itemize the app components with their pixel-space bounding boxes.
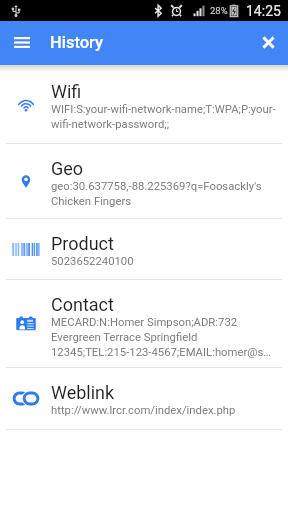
- staticText: MECARD:N:Homer Simpson;ADR:732: [51, 316, 238, 329]
- staticText: Evergreen Terrace Springfield: [51, 331, 198, 344]
- button[interactable]: Product: [0, 219, 288, 279]
- staticText: Chicken Fingers: [51, 195, 132, 208]
- staticText: 28%: [210, 5, 228, 16]
- button[interactable]: Wifi: [0, 65, 288, 143]
- staticText: Wifi: [51, 81, 82, 102]
- button[interactable]: Open navigation menu: [7, 27, 37, 57]
- staticText: 12345;TEL:215-123-4567;EMAIL:homer@s…: [51, 346, 271, 359]
- staticText: Contact: [51, 294, 114, 315]
- staticText: http://www.lrcr.com/index/index.php: [51, 404, 236, 417]
- button[interactable]: Contact: [0, 280, 288, 367]
- staticText: wifi-network-password;;: [51, 118, 170, 131]
- button[interactable]: Geo: [0, 144, 288, 218]
- button[interactable]: Weblink: [0, 368, 288, 429]
- staticText: geo:30.637758,-88.225369?q=Foosackly's: [51, 180, 262, 193]
- staticText: 14:25: [246, 3, 281, 19]
- staticText: History: [50, 33, 104, 52]
- staticText: WIFI:S:your-wifi-network-name;T:WPA;P:yo…: [51, 103, 276, 116]
- staticText: Geo: [51, 158, 84, 179]
- staticText: Weblink: [51, 382, 115, 403]
- staticText: Product: [51, 233, 114, 254]
- button[interactable]: Close: [253, 27, 283, 57]
- staticText: 5023652240100: [51, 255, 134, 268]
